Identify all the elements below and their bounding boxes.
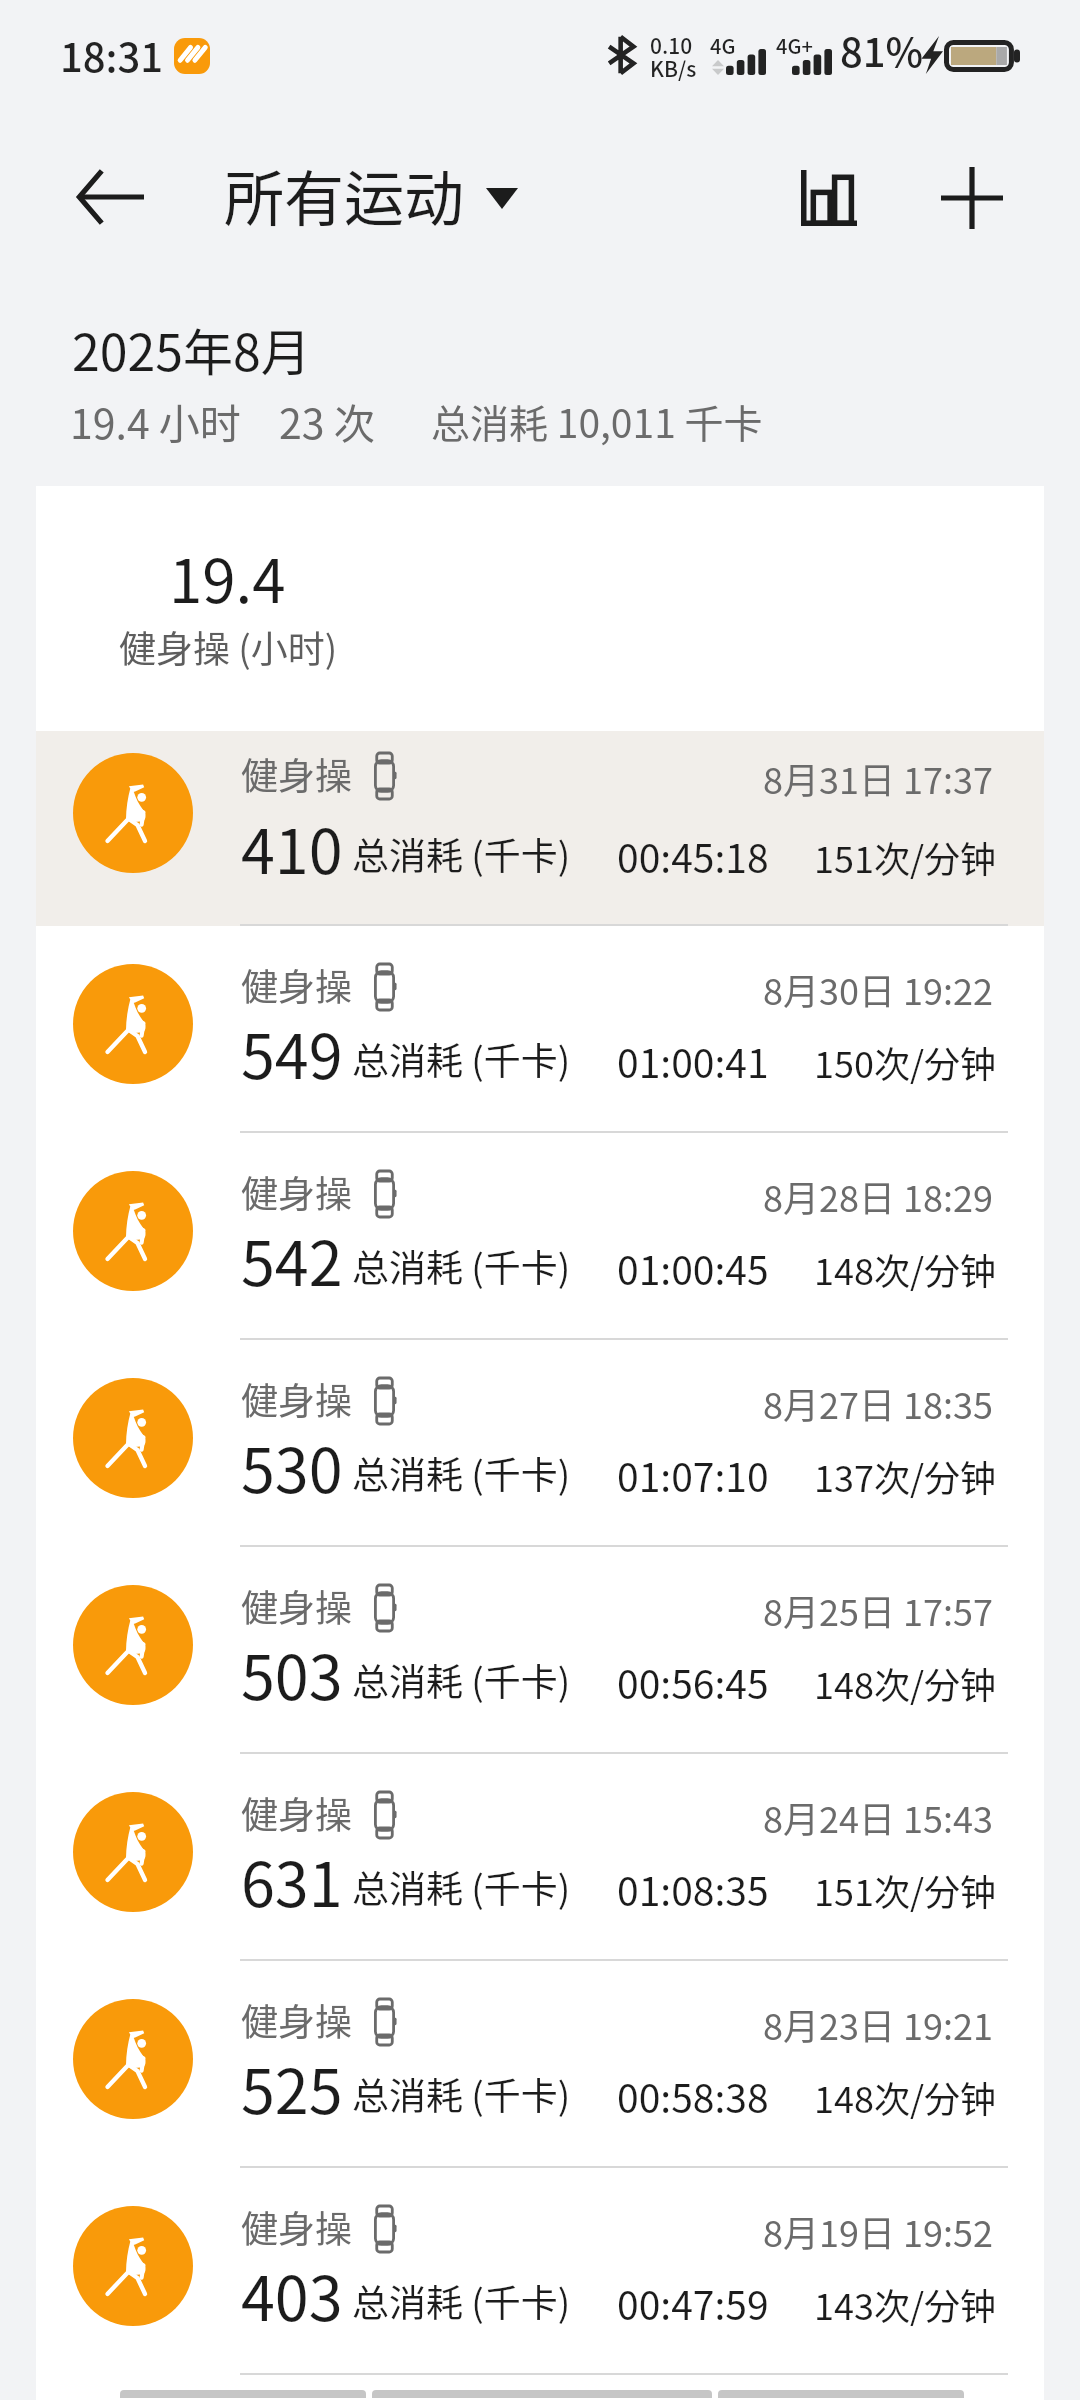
staticText: 19.4 小时 — [70, 391, 241, 450]
staticText: 4G+ — [776, 31, 813, 60]
staticText: 总消耗 (千卡) — [352, 1446, 571, 1500]
staticText: 8月31日 17:37 — [763, 752, 993, 804]
staticText: 健身操 (小时) — [119, 620, 338, 674]
button[interactable]: 健身操 — [36, 1133, 1044, 1340]
button[interactable]: 健身操 — [36, 1754, 1044, 1961]
staticText: 530 — [241, 1422, 343, 1510]
staticText: 81% — [840, 21, 924, 79]
staticText: 健身操 — [241, 1579, 352, 1633]
staticText: 8月30日 19:22 — [763, 963, 993, 1015]
staticText: 01:07:10 — [617, 1447, 769, 1503]
staticText: 410 — [241, 803, 343, 891]
staticText: 8月27日 18:35 — [763, 1377, 993, 1429]
staticText: 总消耗 (千卡) — [352, 1032, 571, 1086]
staticText: 631 — [241, 1836, 343, 1924]
staticText: 总消耗 (千卡) — [352, 2067, 571, 2121]
button[interactable]: 健身操 — [36, 1961, 1044, 2168]
staticText: 8月24日 15:43 — [763, 1791, 993, 1843]
staticText: 549 — [241, 1008, 343, 1096]
staticText: 137次/分钟 — [814, 1450, 997, 1502]
staticText: 所有运动 — [224, 151, 464, 238]
button[interactable]: 健身操 — [36, 2168, 1044, 2375]
staticText: 151次/分钟 — [814, 831, 997, 883]
staticText: 00:47:59 — [617, 2275, 769, 2331]
staticText: 总消耗 10,011 千卡 — [431, 393, 763, 449]
staticText: 01:00:45 — [617, 1240, 769, 1296]
staticText: 01:00:41 — [617, 1033, 769, 1089]
button[interactable]: Back — [56, 150, 166, 244]
staticText: KB/s — [650, 53, 697, 83]
staticText: 4G — [710, 31, 736, 60]
staticText: 0.10 — [650, 30, 693, 60]
staticText: 503 — [241, 1629, 343, 1717]
staticText: 健身操 — [241, 1165, 352, 1219]
staticText: 150次/分钟 — [814, 1036, 997, 1088]
button[interactable]: Add — [917, 150, 1027, 246]
staticText: 总消耗 (千卡) — [352, 1653, 571, 1707]
button[interactable]: Statistics — [776, 150, 882, 246]
staticText: 148次/分钟 — [814, 1657, 997, 1709]
staticText: 总消耗 (千卡) — [352, 2274, 571, 2328]
staticText: 总消耗 (千卡) — [352, 827, 571, 881]
button[interactable]: 所有运动 — [214, 148, 534, 248]
staticText: 健身操 — [241, 2200, 352, 2254]
staticText: 8月28日 18:29 — [763, 1170, 993, 1222]
staticText: 01:08:35 — [617, 1861, 769, 1917]
staticText: 8月23日 19:21 — [763, 1998, 993, 2050]
button[interactable]: 健身操 — [36, 926, 1044, 1133]
staticText: 总消耗 (千卡) — [352, 1239, 571, 1293]
staticText: 19.4 — [169, 533, 286, 620]
staticText: 403 — [241, 2250, 343, 2338]
button[interactable]: 健身操 — [36, 1547, 1044, 1754]
button[interactable]: 健身操 — [36, 731, 1044, 926]
staticText: 143次/分钟 — [814, 2278, 997, 2330]
staticText: 8月19日 19:52 — [763, 2205, 993, 2257]
staticText: 148次/分钟 — [814, 2071, 997, 2123]
staticText: 525 — [241, 2043, 343, 2131]
staticText: 2025年8月 — [72, 313, 311, 385]
staticText: 23 次 — [279, 391, 375, 450]
staticText: 健身操 — [241, 1993, 352, 2047]
staticText: 18:31 — [60, 26, 164, 84]
staticText: 健身操 — [241, 747, 352, 801]
staticText: 148次/分钟 — [814, 1243, 997, 1295]
staticText: 00:56:45 — [617, 1654, 769, 1710]
staticText: 健身操 — [241, 1372, 352, 1426]
staticText: 00:58:38 — [617, 2068, 769, 2124]
staticText: 总消耗 (千卡) — [352, 1860, 571, 1914]
staticText: 542 — [241, 1215, 343, 1303]
staticText: 00:45:18 — [617, 828, 769, 884]
staticText: 151次/分钟 — [814, 1864, 997, 1916]
button[interactable]: 健身操 — [36, 1340, 1044, 1547]
staticText: 健身操 — [241, 1786, 352, 1840]
staticText: 健身操 — [241, 958, 352, 1012]
staticText: 8月25日 17:57 — [763, 1584, 993, 1636]
